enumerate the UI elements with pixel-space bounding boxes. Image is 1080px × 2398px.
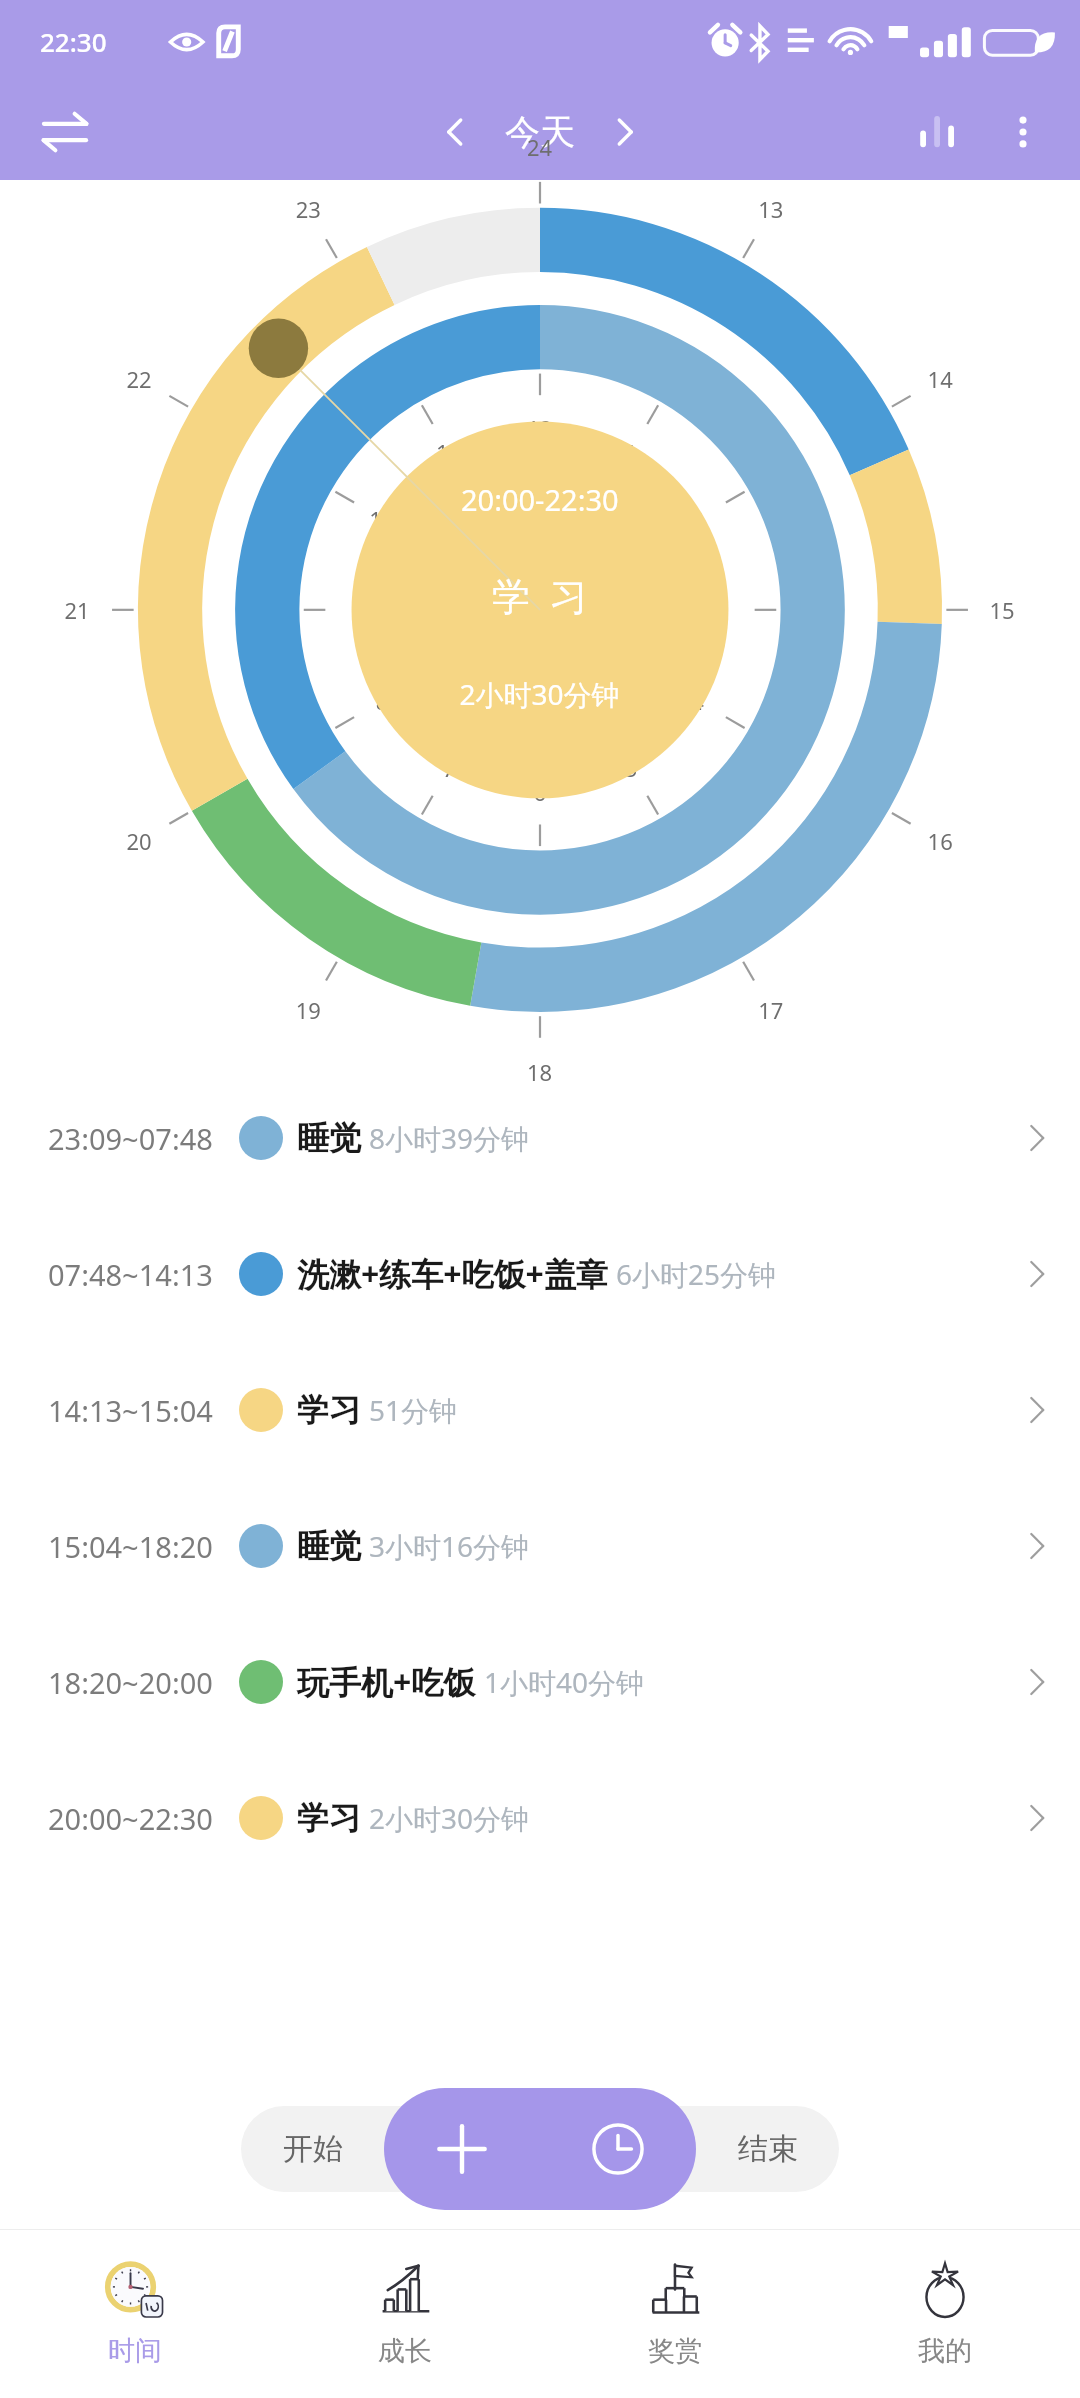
- button[interactable]: 14:13~15:04: [0, 1342, 1080, 1478]
- button[interactable]: Next day: [587, 94, 663, 170]
- staticText: 洗漱+练车+吃饭+盖章: [297, 1252, 608, 1296]
- staticText: 14:13~15:04: [48, 1391, 213, 1430]
- button[interactable]: Timer: [540, 2088, 696, 2210]
- staticText: 玩手机+吃饭: [297, 1660, 476, 1704]
- button[interactable]: 23:09~07:48: [0, 1070, 1080, 1206]
- button[interactable]: 成长: [270, 2230, 540, 2398]
- staticText: 07:48~14:13: [48, 1255, 213, 1294]
- staticText: 18:20~20:00: [48, 1663, 213, 1702]
- button[interactable]: Statistics: [894, 89, 980, 175]
- button[interactable]: 时间: [0, 2230, 270, 2398]
- staticText: 奖赏: [648, 2334, 702, 2368]
- staticText: 2小时30分钟: [369, 1799, 530, 1837]
- button[interactable]: 18:20~20:00: [0, 1614, 1080, 1750]
- staticText: 睡觉: [297, 1118, 361, 1158]
- button[interactable]: 07:48~14:13: [0, 1206, 1080, 1342]
- button[interactable]: More options: [980, 89, 1066, 175]
- staticText: 开始: [283, 2130, 343, 2168]
- staticText: 23:09~07:48: [48, 1119, 213, 1158]
- staticText: 6小时25分钟: [616, 1255, 777, 1293]
- staticText: 学习: [297, 1390, 361, 1430]
- button[interactable]: 15:04~18:20: [0, 1478, 1080, 1614]
- button[interactable]: 今天: [505, 110, 575, 154]
- staticText: 结束: [738, 2130, 798, 2168]
- staticText: 8小时39分钟: [369, 1119, 530, 1157]
- staticText: 3小时16分钟: [369, 1527, 530, 1565]
- button[interactable]: 结束: [697, 2106, 839, 2192]
- staticText: 学习: [297, 1798, 361, 1838]
- staticText: 22:30: [40, 24, 107, 59]
- staticText: 时间: [108, 2334, 162, 2368]
- button[interactable]: 20:00~22:30: [0, 1750, 1080, 1886]
- button[interactable]: 奖赏: [540, 2230, 810, 2398]
- button[interactable]: Switch view: [22, 89, 108, 175]
- staticText: 1小时40分钟: [484, 1663, 645, 1701]
- staticText: 睡觉: [297, 1526, 361, 1566]
- button[interactable]: Previous day: [417, 94, 493, 170]
- staticText: 20:00~22:30: [48, 1799, 213, 1838]
- staticText: 51分钟: [369, 1391, 458, 1429]
- button[interactable]: 开始: [241, 2106, 384, 2192]
- staticText: 我的: [918, 2334, 972, 2368]
- button[interactable]: 我的: [810, 2230, 1080, 2398]
- button[interactable]: Add record: [384, 2088, 540, 2210]
- staticText: 成长: [378, 2334, 432, 2368]
- staticText: 15:04~18:20: [48, 1527, 213, 1566]
